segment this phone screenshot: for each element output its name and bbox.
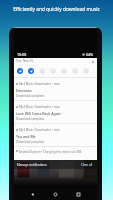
button[interactable]: Android System • Charging this device vi… [14,147,97,160]
button[interactable]: Quick setting [39,68,45,74]
staticText: Android System • Charging this device vi… [19,150,82,154]
button[interactable]: Quick setting [61,68,67,74]
button[interactable]: Quick setting [83,68,89,74]
staticText: Mp3 Music Downloader • now [19,128,60,132]
button[interactable]: Mp3 Music Downloader • now [14,101,97,123]
staticText: Love Will Come Back Again [16,111,61,116]
staticText: Emotions [16,88,32,93]
button[interactable]: Quick setting [28,68,34,74]
button[interactable]: Quick setting [72,68,78,74]
staticText: Mp3 Music Downloader • now [19,105,60,109]
staticText: Mp3 Music Downloader • now [19,82,60,86]
staticText: 64% [86,52,94,57]
button[interactable]: Quick setting [17,68,23,74]
button[interactable]: Mp3 Music Downloader • now [14,78,97,100]
button[interactable]: Mp3 Music Downloader • now [14,124,97,146]
button[interactable]: Back [28,190,37,199]
button[interactable]: Manage notifications [14,163,47,167]
button[interactable]: Recents [74,190,83,199]
staticText: 10:08 [17,52,27,57]
button[interactable]: Home [51,190,60,199]
staticText: Download complete [16,117,45,121]
staticText: You and Me [16,134,36,139]
button[interactable]: Clear all [81,163,97,167]
button[interactable]: Quick setting [50,68,56,74]
staticText: Efficiently and quickly download music [0,6,113,13]
staticText: Download complete [16,140,45,144]
staticText: Download complete [16,94,45,98]
staticText: Tue, Nov 10 [16,59,34,63]
